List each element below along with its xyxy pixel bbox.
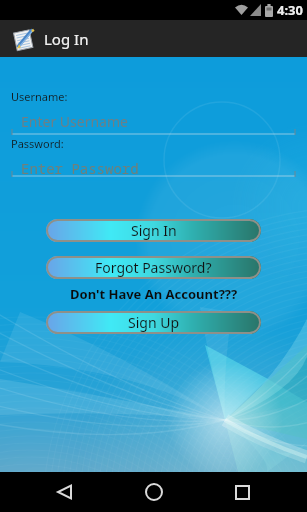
staticText: Password: xyxy=(11,136,64,151)
button[interactable] xyxy=(218,472,266,512)
button[interactable] xyxy=(130,472,178,512)
button[interactable]: Enter Username xyxy=(11,104,296,135)
staticText: Username: xyxy=(11,89,68,104)
button[interactable]: Sign In xyxy=(46,219,261,242)
button[interactable]: Forgot Password? xyxy=(46,256,261,279)
staticText: Sign In xyxy=(131,221,177,240)
staticText: Log In xyxy=(44,29,89,49)
staticText: Forgot Password? xyxy=(95,258,212,277)
staticText: Don't Have An Account??? xyxy=(70,285,238,303)
staticText: Enter Password xyxy=(21,159,139,178)
staticText: 4:30 xyxy=(277,1,303,19)
staticText: Sign Up xyxy=(128,313,180,332)
button[interactable]: Sign Up xyxy=(46,311,261,334)
button[interactable] xyxy=(41,472,89,512)
button[interactable]: Enter Password xyxy=(11,151,296,181)
staticText: Enter Username xyxy=(21,112,128,131)
